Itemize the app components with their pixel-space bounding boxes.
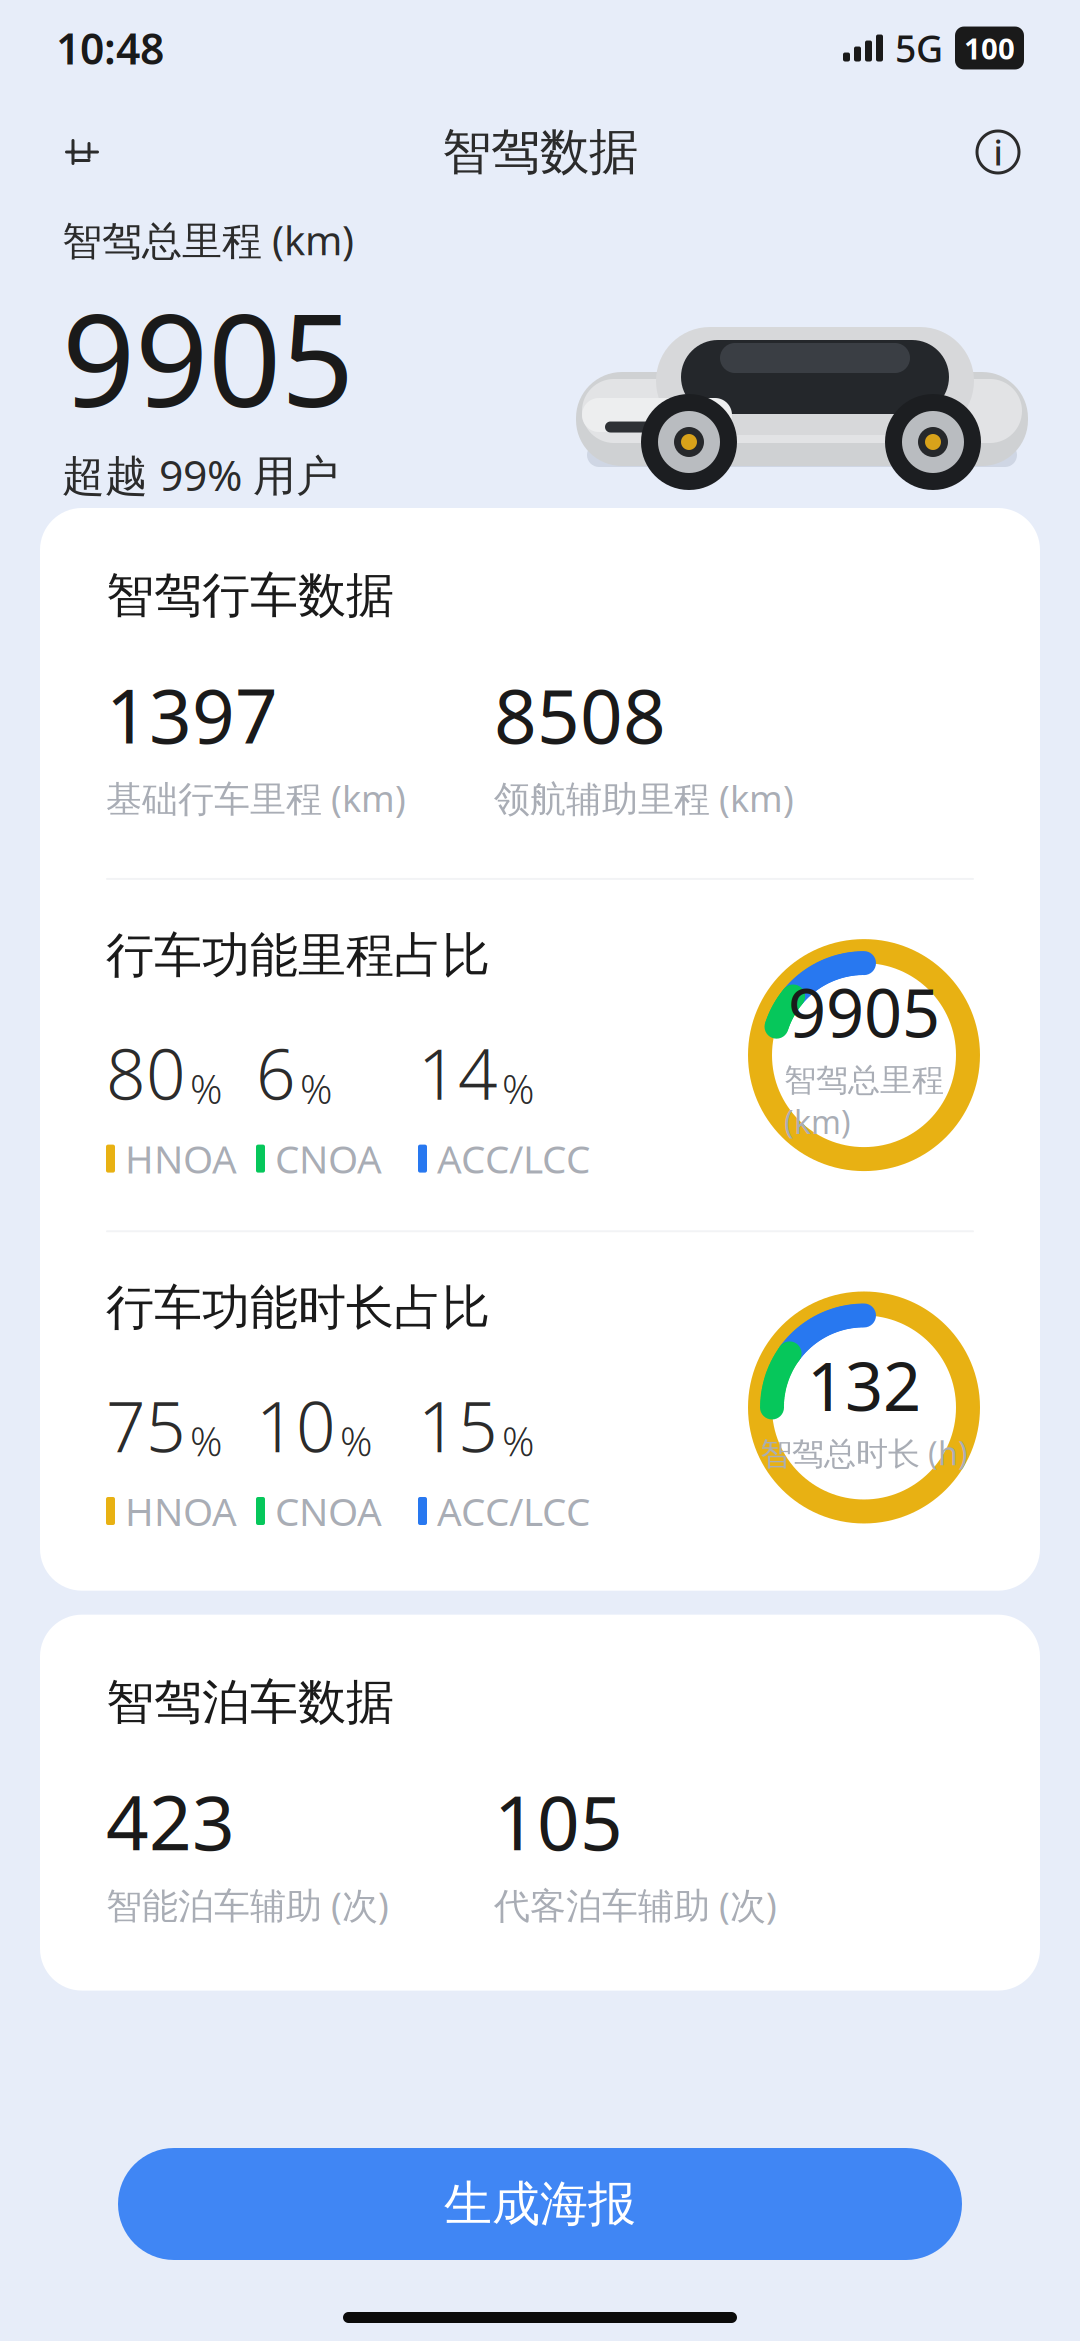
button[interactable]: 生成海报 [118, 2148, 962, 2260]
staticText: 领航辅助里程 (km) [494, 774, 794, 822]
staticText: i [993, 129, 1002, 175]
staticText: 8508 [494, 665, 666, 764]
staticText: 生成海报 [444, 2174, 636, 2233]
staticText: 15 [418, 1379, 498, 1471]
staticText: % [340, 1414, 372, 1467]
staticText: 80 [106, 1027, 186, 1119]
staticText: 132 [807, 1341, 921, 1429]
staticText: 智驾总时长 (h) [760, 1431, 968, 1474]
button[interactable]: 返回 [52, 122, 112, 182]
staticText: 6 [256, 1027, 296, 1119]
staticText: ACC/LCC [437, 1485, 590, 1537]
staticText: % [300, 1062, 332, 1115]
staticText: % [190, 1062, 222, 1115]
staticText: 行车功能里程占比 [106, 926, 490, 985]
staticText: 423 [106, 1772, 235, 1871]
staticText: % [502, 1414, 534, 1467]
staticText: 智驾总里程 (km) [784, 1058, 944, 1143]
staticText: 智驾数据 [442, 122, 638, 182]
staticText: 行车功能时长占比 [106, 1278, 490, 1337]
staticText: 智驾总里程 (km) [62, 213, 354, 266]
staticText: 9905 [62, 272, 354, 442]
staticText: CNOA [275, 1485, 382, 1537]
staticText: 10:48 [56, 20, 164, 76]
staticText: HNOA [125, 1133, 237, 1184]
staticText: 智能泊车辅助 (次) [106, 1881, 389, 1929]
staticText: % [190, 1414, 222, 1467]
staticText: 75 [106, 1379, 186, 1471]
staticText: 9905 [788, 967, 940, 1056]
staticText: CNOA [275, 1133, 382, 1184]
staticText: % [502, 1062, 534, 1115]
staticText: 1397 [106, 665, 278, 764]
staticText: 5G [895, 23, 943, 73]
staticText: 100 [964, 28, 1015, 67]
button[interactable]: 信息 [968, 122, 1028, 182]
staticText: 105 [494, 1772, 623, 1871]
staticText: 超越 99% 用户 [62, 446, 339, 503]
staticText: 10 [256, 1379, 336, 1471]
staticText: 代客泊车辅助 (次) [494, 1881, 777, 1929]
staticText: 14 [418, 1027, 498, 1119]
staticText: 智驾行车数据 [106, 566, 394, 625]
staticText: 智驾泊车数据 [106, 1673, 394, 1732]
staticText: ACC/LCC [437, 1133, 590, 1184]
staticText: 基础行车里程 (km) [106, 774, 406, 822]
staticText: HNOA [125, 1485, 237, 1537]
